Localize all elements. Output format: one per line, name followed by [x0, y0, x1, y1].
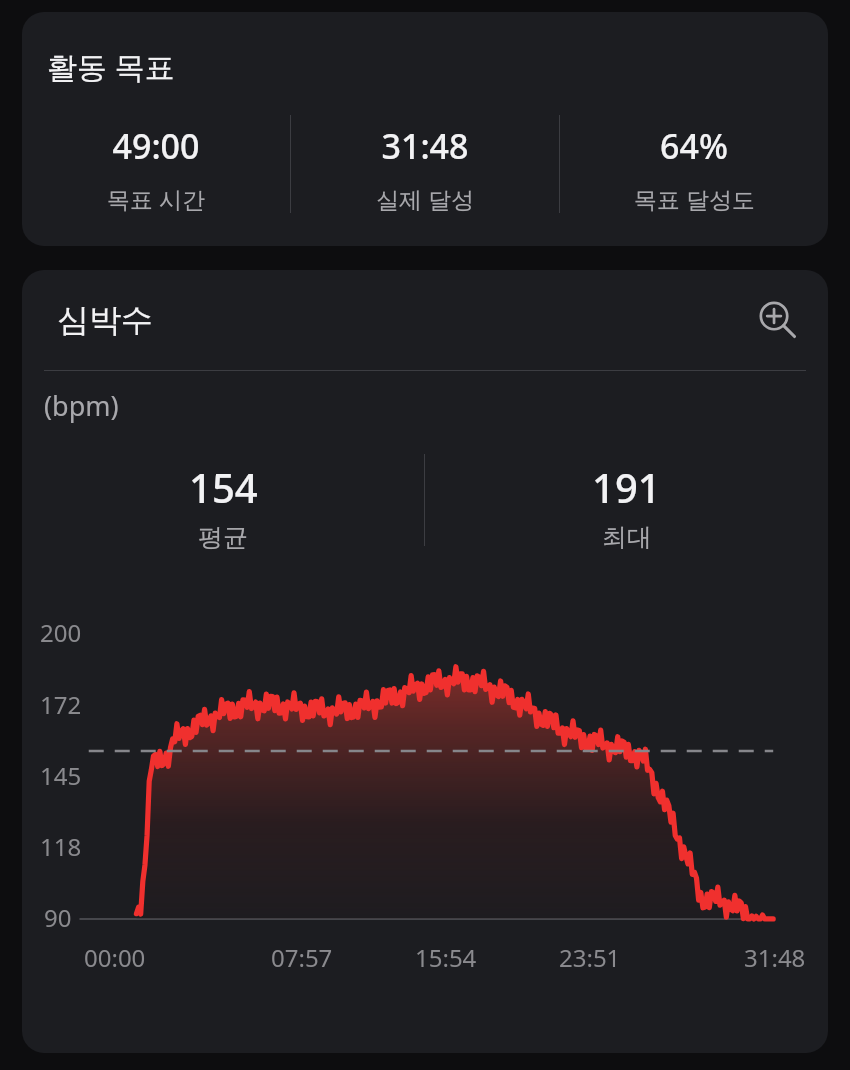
staticText: 00:00 [84, 941, 146, 974]
staticText: 15:54 [415, 941, 477, 974]
staticText: (bpm) [44, 387, 119, 424]
staticText: 목표 시간 [107, 183, 205, 214]
staticText: 90 [44, 901, 72, 934]
button[interactable]: 활동 목표 [22, 12, 828, 246]
staticText: 200 [40, 616, 82, 649]
staticText: 118 [40, 830, 82, 863]
staticText: 07:57 [271, 941, 333, 974]
staticText: 191 [592, 460, 661, 514]
staticText: 활동 목표 [47, 46, 175, 87]
staticText: 실제 달성 [376, 183, 474, 214]
staticText: 145 [40, 759, 82, 792]
staticText: 목표 달성도 [634, 183, 755, 214]
staticText: 최대 [602, 522, 652, 553]
staticText: 평균 [198, 522, 248, 553]
button[interactable]: Zoom in heart rate chart [750, 292, 806, 348]
staticText: 49:00 [112, 123, 200, 169]
staticText: 172 [40, 688, 82, 721]
staticText: 31:48 [744, 941, 806, 974]
staticText: 심박수 [57, 300, 153, 340]
staticText: 31:48 [381, 123, 469, 169]
staticText: 23:51 [559, 941, 621, 974]
staticText: 64% [660, 123, 728, 169]
staticText: 154 [189, 460, 258, 514]
